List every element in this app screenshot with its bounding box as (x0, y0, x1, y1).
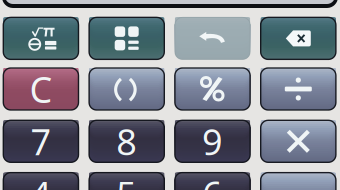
button[interactable]: Parentheses (89, 68, 164, 110)
staticText: 4 (30, 170, 51, 190)
button[interactable]: 6 (175, 173, 250, 190)
staticText: 8 (116, 117, 137, 165)
button[interactable]: Scientific functions (3, 17, 78, 59)
staticText: 5 (116, 170, 137, 190)
button[interactable]: C (3, 68, 78, 110)
button[interactable]: 9 (175, 120, 250, 162)
button[interactable]: Layouts (89, 17, 164, 59)
staticText: C (29, 65, 52, 113)
button[interactable]: 7 (3, 120, 78, 162)
button[interactable]: 5 (89, 173, 164, 190)
staticText: 9 (202, 117, 223, 165)
button[interactable]: Divide (261, 68, 336, 110)
button[interactable]: Undo (175, 17, 250, 59)
button[interactable]: Delete (261, 17, 336, 59)
button[interactable]: Multiply (261, 120, 336, 162)
button[interactable]: Percent (175, 68, 250, 110)
button[interactable]: 4 (3, 173, 78, 190)
button[interactable]: 8 (89, 120, 164, 162)
staticText: 7 (30, 117, 51, 165)
button[interactable]: Subtract (261, 173, 336, 190)
staticText: 6 (202, 170, 223, 190)
